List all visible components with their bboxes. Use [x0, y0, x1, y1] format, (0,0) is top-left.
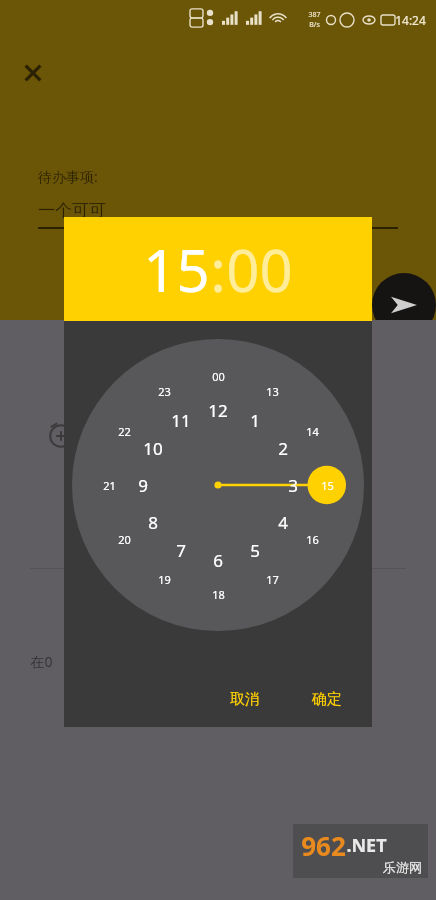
staticText: 14:24 — [395, 12, 426, 28]
staticText: 00 — [212, 369, 225, 384]
staticText: 6 — [213, 549, 223, 572]
staticText: 乐游网 — [383, 859, 422, 875]
staticText: 确定 — [312, 690, 342, 709]
button[interactable]: 17 — [257, 564, 287, 594]
button[interactable]: 13 — [257, 376, 287, 406]
staticText: B/s — [309, 20, 320, 30]
staticText: 14 — [306, 424, 319, 439]
staticText: 18 — [212, 587, 225, 602]
button[interactable]: 18 — [203, 579, 233, 609]
button[interactable]: 22 — [109, 416, 139, 446]
button[interactable]: 12 — [203, 395, 233, 425]
button[interactable]: 21 — [94, 470, 124, 500]
button[interactable]: 4 — [268, 507, 298, 537]
button[interactable]: 1 — [240, 405, 270, 435]
staticText: 待办事项: — [38, 167, 98, 186]
button[interactable]: 20 — [109, 524, 139, 554]
button[interactable]: 10 — [138, 433, 168, 463]
button[interactable]: 23 — [149, 376, 179, 406]
staticText: 2 — [278, 437, 288, 460]
staticText: 15 — [143, 230, 210, 309]
button[interactable]: 19 — [149, 564, 179, 594]
staticText: 10 — [143, 437, 163, 460]
staticText: 在0 — [30, 652, 53, 671]
button[interactable]: 14 — [297, 416, 327, 446]
button[interactable]: 确定 — [300, 682, 354, 717]
staticText: 12 — [208, 399, 228, 422]
staticText: 21 — [103, 478, 116, 493]
staticText: 387 — [308, 10, 321, 20]
button[interactable]: 5 — [240, 535, 270, 565]
button[interactable]: 00 — [203, 361, 233, 391]
staticText: : — [210, 230, 226, 309]
staticText: 22 — [118, 424, 131, 439]
button[interactable]: 15 — [312, 470, 342, 500]
button[interactable]: Send — [372, 273, 436, 337]
button[interactable]: 6 — [203, 545, 233, 575]
staticText: .NET — [346, 833, 387, 858]
staticText: 15 — [321, 478, 334, 493]
staticText: 19 — [158, 572, 171, 587]
button[interactable]: 16 — [297, 524, 327, 554]
button[interactable]: Add alarm — [46, 420, 76, 450]
staticText: 1 — [250, 409, 260, 432]
staticText: 20 — [118, 532, 131, 547]
staticText: 13 — [266, 384, 279, 399]
staticText: 23 — [158, 384, 171, 399]
staticText: 16 — [306, 532, 319, 547]
staticText: 取消 — [230, 690, 260, 709]
button[interactable]: 8 — [138, 507, 168, 537]
button[interactable]: 15 — [143, 230, 210, 309]
staticText: 7 — [176, 539, 186, 562]
staticText: 11 — [171, 409, 191, 432]
staticText: 17 — [266, 572, 279, 587]
button[interactable]: 7 — [166, 535, 196, 565]
button[interactable]: 9 — [128, 470, 158, 500]
button[interactable]: 11 — [166, 405, 196, 435]
button[interactable]: 取消 — [218, 682, 272, 717]
staticText: 5 — [250, 539, 260, 562]
button[interactable]: Close — [17, 57, 49, 89]
staticText: 3 — [288, 474, 298, 497]
staticText: 一个可可 — [38, 200, 106, 221]
button[interactable]: 00 — [226, 230, 293, 309]
button[interactable]: 3 — [278, 470, 308, 500]
staticText: 8 — [148, 511, 158, 534]
button[interactable]: 2 — [268, 433, 298, 463]
staticText: 4 — [278, 511, 288, 534]
staticText: 00 — [226, 230, 293, 309]
staticText: 962 — [301, 828, 346, 863]
staticText: 9 — [138, 474, 148, 497]
